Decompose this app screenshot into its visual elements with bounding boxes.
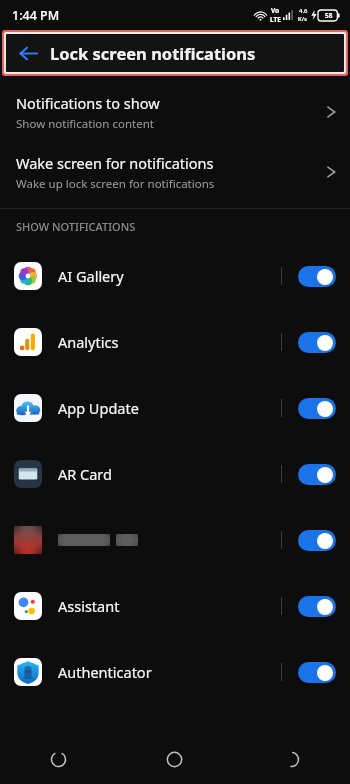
button[interactable]: Home bbox=[116, 734, 233, 784]
button[interactable]: Toggle notification bbox=[298, 332, 336, 353]
button[interactable]: Recent apps bbox=[0, 734, 116, 784]
button[interactable]: Toggle notification bbox=[298, 398, 336, 419]
button[interactable]: Authenticator bbox=[0, 639, 350, 705]
button[interactable]: Toggle notification bbox=[298, 530, 336, 551]
button[interactable]: Analytics bbox=[0, 309, 350, 375]
staticText: Wake up lock screen for notifications bbox=[16, 176, 215, 192]
button[interactable]: Toggle notification bbox=[298, 266, 336, 287]
button[interactable]: Notifications to show bbox=[0, 82, 350, 142]
button[interactable]: Assistant bbox=[0, 573, 350, 639]
staticText: AR Card bbox=[58, 464, 281, 484]
staticText: Lock screen notifications bbox=[50, 42, 256, 64]
staticText: SHOW NOTIFICATIONS bbox=[16, 219, 136, 234]
staticText: Vo bbox=[271, 6, 280, 15]
staticText: Notifications to show bbox=[16, 93, 160, 113]
button[interactable]: Back bbox=[233, 734, 350, 784]
button[interactable]: Wake screen for notifications bbox=[0, 142, 350, 202]
button[interactable]: Back bbox=[6, 34, 50, 72]
staticText: AI Gallery bbox=[58, 266, 281, 286]
staticText: 1:44 PM bbox=[12, 7, 60, 24]
staticText: App Update bbox=[58, 398, 281, 418]
button[interactable]: Toggle notification bbox=[0, 507, 350, 573]
staticText: LTE bbox=[270, 15, 281, 24]
staticText: Assistant bbox=[58, 596, 281, 616]
staticText: 58 bbox=[325, 11, 333, 20]
staticText: K/s bbox=[298, 15, 308, 23]
staticText: Show notification content bbox=[16, 116, 154, 132]
button[interactable]: AI Gallery bbox=[0, 243, 350, 309]
staticText: Analytics bbox=[58, 332, 281, 352]
staticText: Authenticator bbox=[58, 662, 281, 682]
button[interactable]: AR Card bbox=[0, 441, 350, 507]
staticText: Wake screen for notifications bbox=[16, 153, 214, 173]
button[interactable]: Toggle notification bbox=[298, 464, 336, 485]
staticText: 4.6 bbox=[299, 7, 308, 15]
button[interactable]: App Update bbox=[0, 375, 350, 441]
button[interactable]: Toggle notification bbox=[298, 596, 336, 617]
button[interactable]: Toggle notification bbox=[298, 662, 336, 683]
